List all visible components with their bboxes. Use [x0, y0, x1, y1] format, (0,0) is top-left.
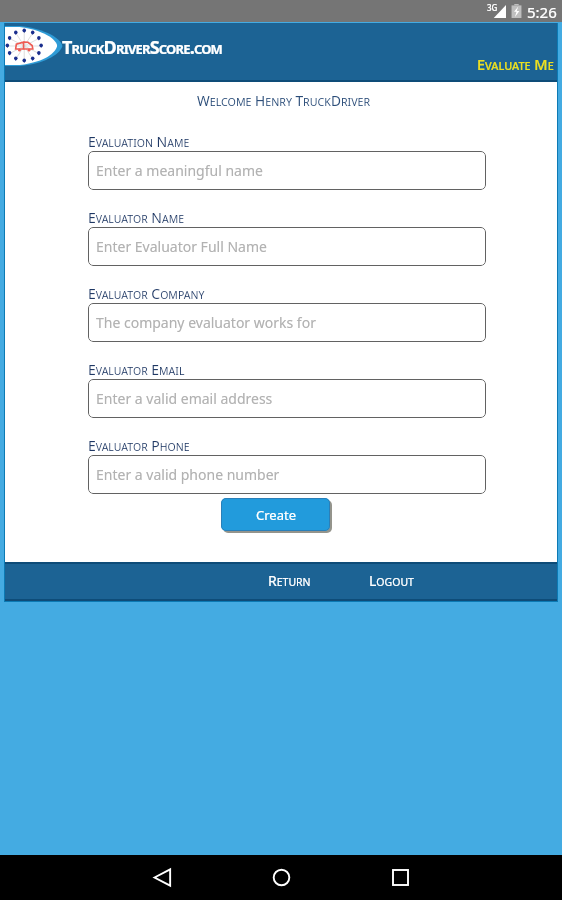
- button[interactable]: EVALUATE ME: [475, 53, 555, 74]
- button[interactable]: Back: [134, 855, 190, 900]
- staticText: RETURN: [268, 571, 311, 590]
- staticText: WELCOME HENRY TRUCKDRIVER: [197, 91, 371, 110]
- button[interactable]: Enter a valid phone number: [88, 455, 486, 494]
- staticText: 5:26: [527, 2, 557, 22]
- staticText: The company evaluator works for: [96, 313, 316, 332]
- button[interactable]: Home: [253, 855, 309, 900]
- button[interactable]: LOGOUT: [361, 565, 422, 596]
- button[interactable]: Enter Evaluator Full Name: [88, 227, 486, 266]
- button[interactable]: Recent apps: [372, 855, 428, 900]
- button[interactable]: The company evaluator works for: [88, 303, 486, 342]
- staticText: EVALUATOR NAME: [88, 208, 185, 227]
- button[interactable]: Enter a meaningful name: [88, 151, 486, 190]
- button[interactable]: Create: [221, 498, 330, 531]
- staticText: LOGOUT: [369, 571, 414, 590]
- staticText: TRUCKDRIVERSCORE.COM: [62, 35, 223, 60]
- staticText: Enter a valid phone number: [96, 465, 280, 484]
- button[interactable]: RETURN: [259, 565, 320, 596]
- staticText: Create: [256, 506, 296, 524]
- staticText: 3G: [487, 2, 498, 13]
- staticText: EVALUATION NAME: [88, 132, 190, 151]
- staticText: Enter a valid email address: [96, 389, 273, 408]
- button[interactable]: Enter a valid email address: [88, 379, 486, 418]
- staticText: EVALUATE ME: [477, 54, 554, 74]
- staticText: EVALUATOR EMAIL: [88, 360, 185, 379]
- staticText: EVALUATOR COMPANY: [88, 284, 205, 303]
- staticText: Enter Evaluator Full Name: [96, 237, 267, 256]
- staticText: EVALUATOR PHONE: [88, 436, 190, 455]
- staticText: Enter a meaningful name: [96, 161, 263, 180]
